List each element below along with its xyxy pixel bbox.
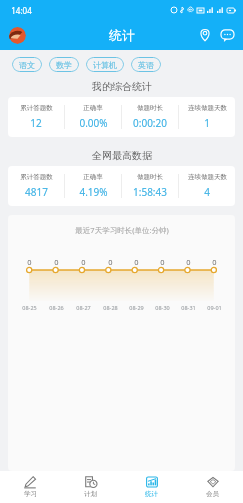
- staticText: 0:00:20: [133, 116, 167, 130]
- staticText: 学习: [24, 490, 37, 498]
- staticText: 正确率: [83, 173, 103, 181]
- staticText: 08-27: [76, 304, 91, 311]
- button[interactable]: 学习: [0, 471, 60, 503]
- staticText: 09-01: [207, 304, 222, 311]
- staticText: 0: [81, 257, 86, 267]
- staticText: 数学: [56, 60, 72, 70]
- staticText: 08-30: [155, 304, 170, 311]
- staticText: 1: [204, 116, 210, 130]
- button[interactable]: Location: [197, 27, 213, 43]
- staticText: 4817: [25, 185, 48, 199]
- staticText: 连续做题天数: [188, 104, 227, 112]
- staticText: 统计: [109, 27, 135, 43]
- staticText: 统计: [145, 490, 158, 498]
- staticText: 最近7天学习时长(单位:分钟): [75, 225, 169, 235]
- staticText: 0: [54, 257, 59, 267]
- staticText: 做题时长: [137, 173, 163, 181]
- staticText: 做题时长: [137, 104, 163, 112]
- button[interactable]: 计算机: [86, 57, 124, 72]
- staticText: 08-28: [103, 304, 118, 311]
- staticText: 会员: [206, 490, 219, 498]
- staticText: 0: [186, 257, 191, 267]
- staticText: 英语: [138, 60, 154, 70]
- staticText: 14:04: [11, 5, 32, 16]
- staticText: 累计答题数: [20, 104, 53, 112]
- staticText: 1:58:43: [133, 185, 167, 199]
- staticText: 累计答题数: [20, 173, 53, 181]
- staticText: 0: [27, 257, 32, 267]
- staticText: 全网最高数据: [92, 149, 152, 162]
- staticText: 0: [160, 257, 165, 267]
- staticText: 语文: [19, 60, 35, 70]
- button[interactable]: Messages: [219, 27, 235, 43]
- staticText: 我的综合统计: [92, 80, 152, 93]
- staticText: 0: [134, 257, 139, 267]
- button[interactable]: Profile: [9, 27, 26, 44]
- staticText: 连续做题天数: [188, 173, 227, 181]
- staticText: 计算机: [93, 60, 117, 70]
- button[interactable]: 语文: [12, 57, 42, 72]
- button[interactable]: 数学: [49, 57, 79, 72]
- staticText: 0: [212, 257, 217, 267]
- button[interactable]: 计划: [60, 471, 121, 503]
- staticText: 0: [108, 257, 113, 267]
- button[interactable]: 统计: [121, 471, 182, 503]
- staticText: 08-25: [22, 304, 37, 311]
- staticText: 08-31: [181, 304, 196, 311]
- staticText: 08-26: [49, 304, 64, 311]
- staticText: 计划: [84, 490, 97, 498]
- staticText: 08-29: [129, 304, 144, 311]
- staticText: 0.00%: [79, 116, 108, 130]
- staticText: 4.19%: [79, 185, 108, 199]
- button[interactable]: 英语: [131, 57, 161, 72]
- staticText: 4: [204, 185, 210, 199]
- staticText: 正确率: [83, 104, 103, 112]
- button[interactable]: 会员: [182, 471, 243, 503]
- staticText: 12: [30, 116, 42, 130]
